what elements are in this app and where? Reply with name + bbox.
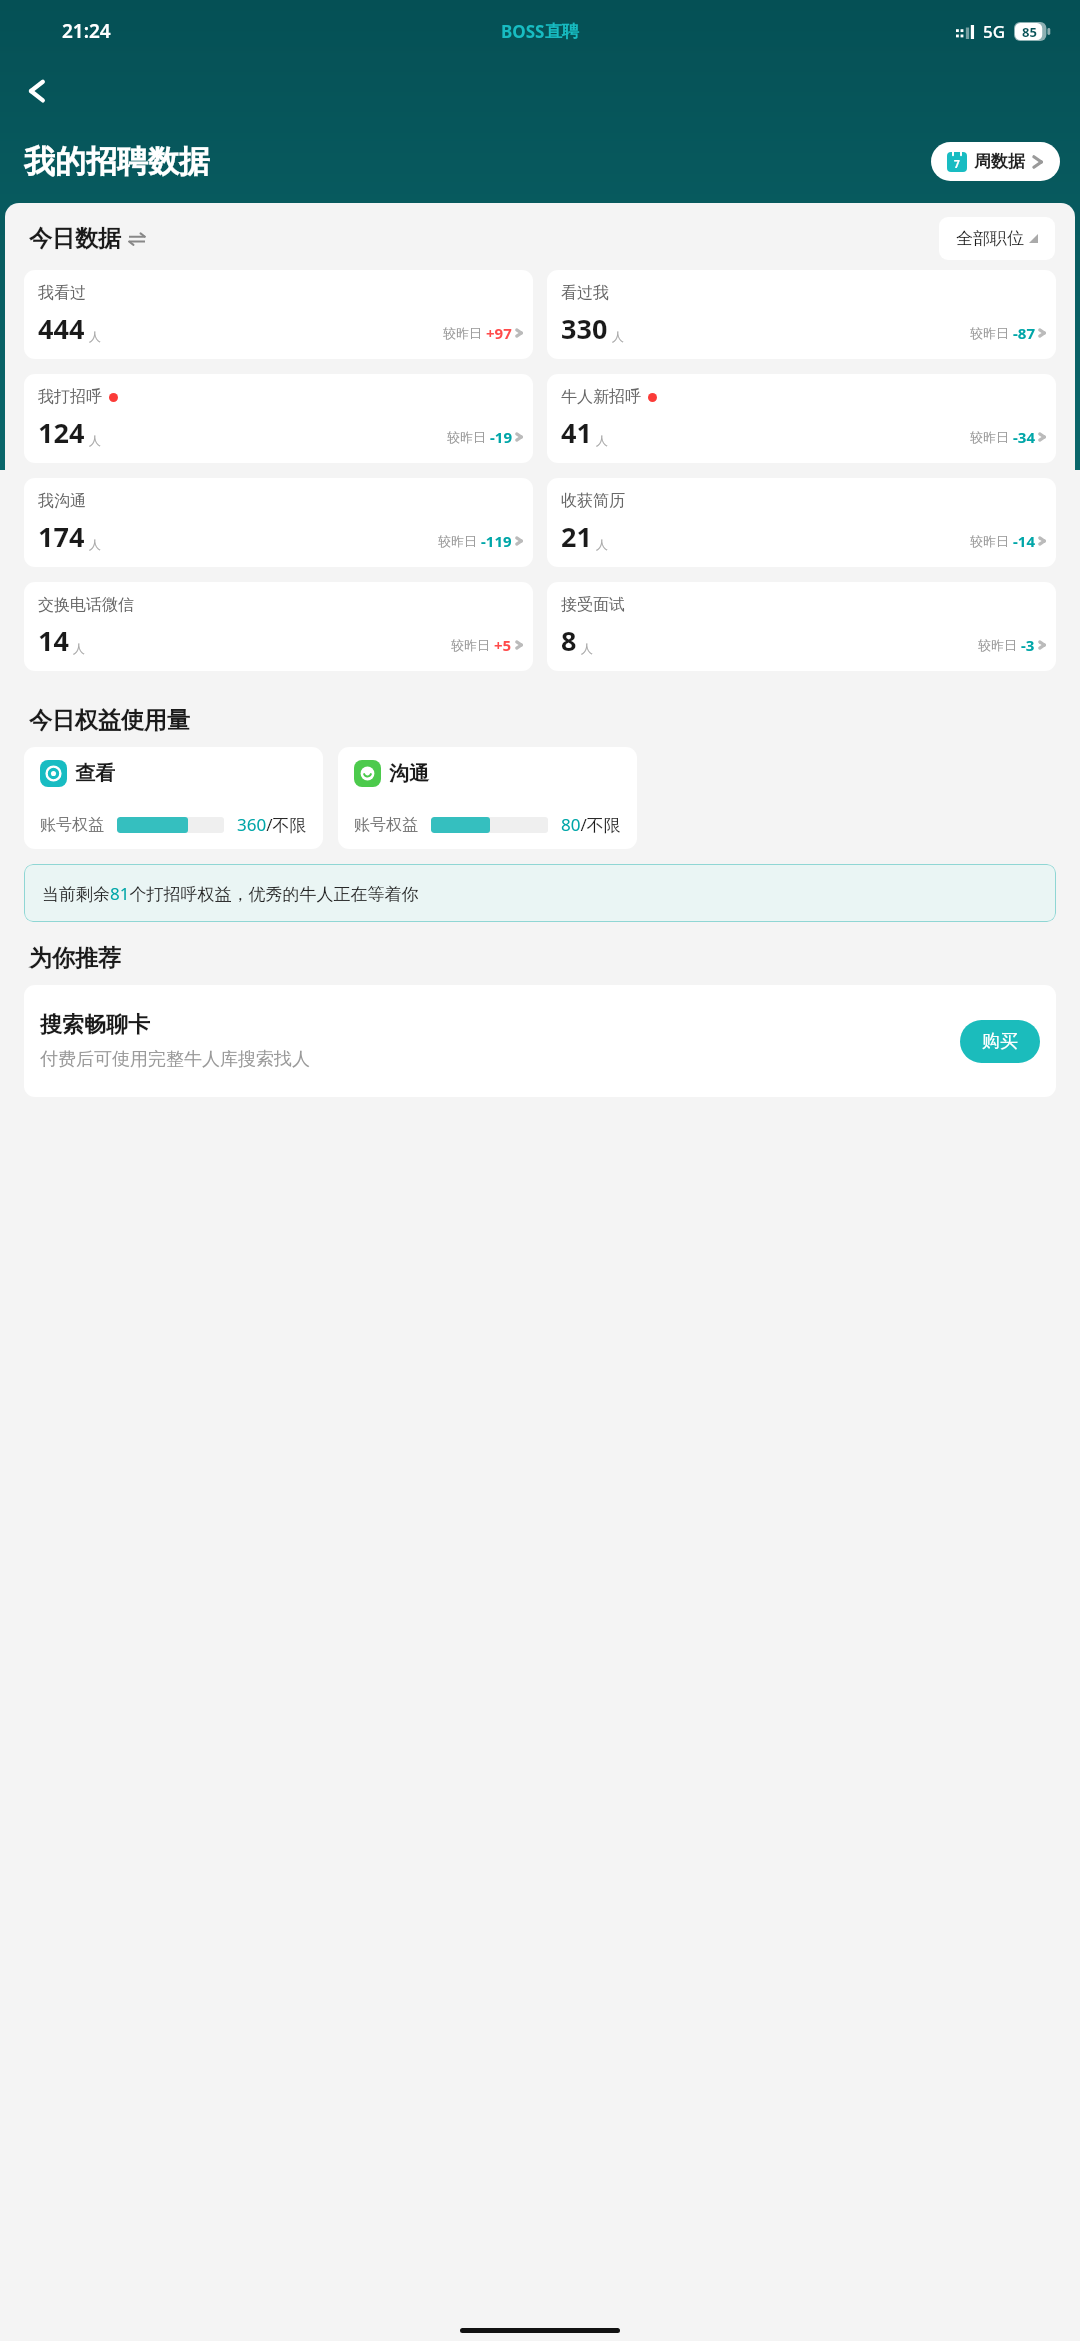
button[interactable]: 7 [931,142,1060,181]
button[interactable]: 沟通 [338,747,637,849]
button[interactable]: 收获简历 [547,478,1056,567]
staticText: 85 [1022,23,1037,41]
button[interactable]: 购买 [960,1020,1040,1063]
staticText: 为你推荐 [29,944,121,973]
staticText: 人 [612,329,624,344]
staticText: +97 [486,323,512,343]
staticText: 交换电话微信 [38,595,134,615]
staticText: 账号权益 [354,815,418,835]
staticText: BOSS [501,20,545,43]
button[interactable]: 查看 [24,747,323,849]
staticText: 今日数据 [29,224,121,253]
button[interactable]: 搜索畅聊卡 [24,985,1056,1097]
button[interactable]: 交换电话微信 [24,582,533,671]
button[interactable]: 当前剩余81个打招呼权益，优秀的牛人正在等着你 [24,864,1056,922]
button[interactable]: 接受面试 [547,582,1056,671]
staticText: 我沟通 [38,491,86,511]
staticText: 人 [89,329,101,344]
staticText: 今日权益使用量 [29,706,190,735]
staticText: 付费后可使用完整牛人库搜索找人 [40,1048,310,1071]
staticText: 360/不限 [237,813,307,836]
staticText: 人 [581,641,593,656]
button[interactable]: 我沟通 [24,478,533,567]
staticText: 较昨日 [970,325,1009,341]
staticText: 21:24 [62,18,111,44]
staticText: 5G [983,20,1006,43]
staticText: 21 [561,518,592,555]
button[interactable]: 全部职位 [939,217,1055,260]
staticText: 较昨日 [978,637,1017,653]
staticText: 看过我 [561,283,609,303]
staticText: 人 [73,641,85,656]
staticText: 我的招聘数据 [24,142,210,181]
staticText: 收获简历 [561,491,625,511]
staticText: 14 [38,622,69,659]
staticText: -119 [481,531,512,551]
staticText: 人 [89,433,101,448]
staticText: +5 [494,635,512,655]
button[interactable]: 看过我 [547,270,1056,359]
staticText: 41 [561,414,592,451]
staticText: 我看过 [38,283,86,303]
staticText: -87 [1013,323,1035,343]
staticText: 8 [561,622,577,659]
staticText: -19 [490,427,512,447]
staticText: 账号权益 [40,815,104,835]
staticText: 购买 [982,1030,1018,1053]
staticText: 124 [38,414,85,451]
staticText: 查看 [75,761,115,786]
staticText: 直聘 [545,21,579,42]
staticText: 444 [38,310,85,347]
staticText: 较昨日 [451,637,490,653]
staticText: 7 [954,157,960,171]
staticText: 人 [596,433,608,448]
staticText: 沟通 [389,761,429,786]
staticText: 80/不限 [561,813,621,836]
staticText: 较昨日 [443,325,482,341]
staticText: 接受面试 [561,595,625,615]
staticText: 330 [561,310,608,347]
button[interactable]: 我打招呼 [24,374,533,463]
staticText: 较昨日 [447,429,486,445]
button[interactable]: 牛人新招呼 [547,374,1056,463]
staticText: 174 [38,518,85,555]
staticText: 周数据 [974,151,1025,172]
staticText: -3 [1021,635,1035,655]
staticText: -14 [1013,531,1035,551]
staticText: -34 [1013,427,1035,447]
staticText: 较昨日 [970,533,1009,549]
button[interactable]: 今日数据 [29,224,145,253]
staticText: 当前剩余81个打招呼权益，优秀的牛人正在等着你 [42,882,419,905]
button[interactable]: 返回 [18,62,58,120]
staticText: 较昨日 [438,533,477,549]
staticText: 我打招呼 [38,387,102,407]
staticText: 牛人新招呼 [561,387,641,407]
staticText: 人 [596,537,608,552]
staticText: 全部职位 [956,228,1024,249]
staticText: 搜索畅聊卡 [40,1011,150,1039]
staticText: 人 [89,537,101,552]
button[interactable]: 我看过 [24,270,533,359]
staticText: 较昨日 [970,429,1009,445]
